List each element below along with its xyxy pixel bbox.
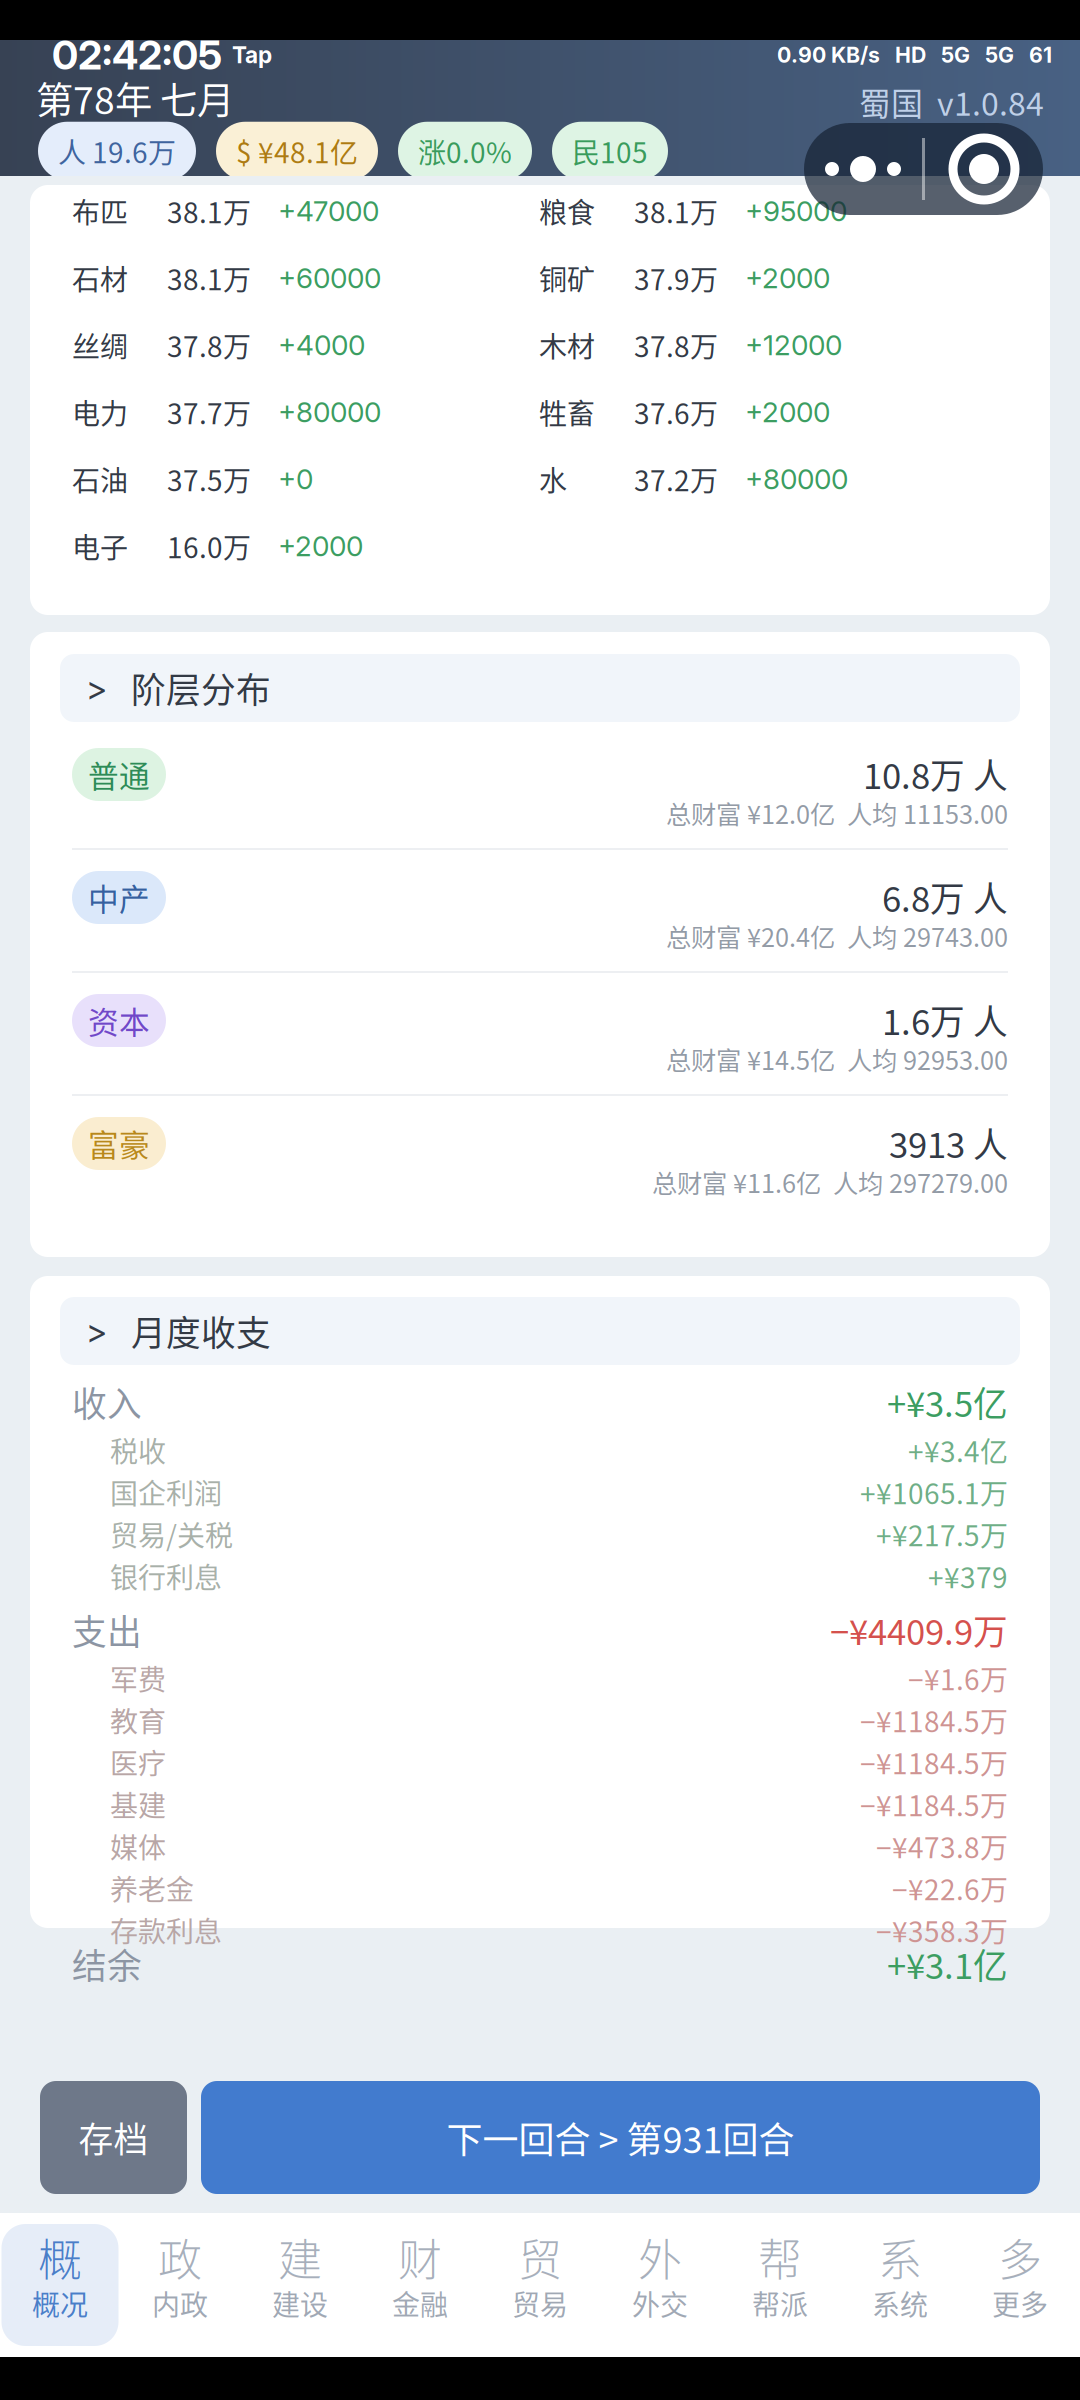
staticText: 结余 xyxy=(72,1939,142,1989)
staticText: 粮食 xyxy=(539,191,595,231)
staticText: 概 xyxy=(38,2225,82,2289)
staticText: 16.0万 xyxy=(167,526,251,566)
staticText: +0 xyxy=(278,462,313,496)
staticText: 中产 xyxy=(88,875,150,920)
staticText: 内政 xyxy=(152,2283,208,2323)
staticText: 37.8万 xyxy=(634,325,718,365)
staticText: 帮派 xyxy=(752,2283,808,2323)
staticText: 37.7万 xyxy=(167,392,251,432)
staticText: 电子 xyxy=(72,526,128,566)
staticText: 0.90 KB/s HD 5G 5G 61 xyxy=(777,42,1052,68)
staticText: −¥1184.5万 xyxy=(860,1742,1008,1782)
staticText: +95000 xyxy=(745,194,847,228)
staticText: 总财富 ¥20.4亿 人均 29743.00 xyxy=(666,918,1008,954)
staticText: 外 xyxy=(638,2225,682,2289)
staticText: > xyxy=(86,668,107,708)
button[interactable]: 帮 xyxy=(720,2223,840,2346)
staticText: +4000 xyxy=(278,328,365,362)
staticText: +¥3.4亿 xyxy=(908,1430,1008,1470)
staticText: 建设 xyxy=(272,2283,328,2323)
staticText: +12000 xyxy=(745,328,842,362)
staticText: 石油 xyxy=(72,459,128,499)
staticText: 军费 xyxy=(110,1658,166,1698)
staticText: 涨0.0% xyxy=(418,131,512,171)
staticText: 阶层分布 xyxy=(107,663,271,713)
button[interactable]: 政 xyxy=(120,2223,240,2346)
staticText: 系统 xyxy=(872,2283,928,2323)
staticText: 布匹 xyxy=(72,191,128,231)
staticText: 富豪 xyxy=(88,1121,150,1166)
button[interactable]: 多 xyxy=(960,2223,1080,2346)
staticText: 政 xyxy=(158,2225,202,2289)
staticText: +¥3.1亿 xyxy=(887,1939,1008,1989)
staticText: 木材 xyxy=(539,325,595,365)
staticText: +60000 xyxy=(278,261,381,295)
staticText: 更多 xyxy=(992,2283,1048,2323)
staticText: 媒体 xyxy=(110,1826,166,1866)
staticText: −¥22.6万 xyxy=(892,1868,1008,1908)
staticText: 3913 人 xyxy=(889,1118,1008,1168)
staticText: +80000 xyxy=(278,395,381,429)
button[interactable]: > xyxy=(60,654,1020,722)
staticText: 银行利息 xyxy=(110,1556,222,1596)
staticText: −¥358.3万 xyxy=(876,1910,1008,1950)
staticText: 37.5万 xyxy=(167,459,251,499)
staticText: 丝绸 xyxy=(72,325,128,365)
staticText: 财 xyxy=(398,2225,442,2289)
staticText: 10.8万 人 xyxy=(863,749,1008,799)
button[interactable]: 外 xyxy=(600,2223,720,2346)
staticText: 石材 xyxy=(72,258,128,298)
button[interactable]: 概 xyxy=(0,2223,120,2346)
staticText: 蜀国 v1.0.84 xyxy=(859,79,1044,125)
staticText: 民105 xyxy=(572,131,648,171)
staticText: 存档 xyxy=(78,2112,148,2163)
staticText: +¥379 xyxy=(928,1556,1008,1596)
staticText: 总财富 ¥11.6亿 人均 297279.00 xyxy=(652,1164,1008,1200)
staticText: 存款利息 xyxy=(110,1910,222,1950)
staticText: 38.1万 xyxy=(634,191,718,231)
staticText: 水 xyxy=(539,459,567,499)
staticText: 支出 xyxy=(72,1605,142,1655)
staticText: −¥1184.5万 xyxy=(860,1784,1008,1824)
staticText: 教育 xyxy=(110,1700,166,1740)
staticText: +¥3.5亿 xyxy=(887,1377,1008,1427)
staticText: 下一回合 > 第931回合 xyxy=(446,2111,794,2163)
staticText: 总财富 ¥12.0亿 人均 11153.00 xyxy=(666,795,1008,831)
staticText: +2000 xyxy=(745,395,830,429)
staticText: 铜矿 xyxy=(539,258,595,298)
staticText: −¥473.8万 xyxy=(876,1826,1008,1866)
staticText: +¥217.5万 xyxy=(876,1514,1008,1554)
staticText: 贸易/关税 xyxy=(110,1514,233,1554)
button[interactable]: 财 xyxy=(360,2223,480,2346)
staticText: > xyxy=(86,1311,107,1351)
staticText: 月度收支 xyxy=(107,1306,271,1356)
button[interactable]: 下一回合 > 第931回合 xyxy=(201,2081,1040,2194)
staticText: 38.1万 xyxy=(167,191,251,231)
staticText: 医疗 xyxy=(110,1742,166,1782)
staticText: 资本 xyxy=(88,998,150,1043)
staticText: +2000 xyxy=(745,261,830,295)
staticText: 基建 xyxy=(110,1784,166,1824)
staticText: 第78年 七月 xyxy=(36,71,234,125)
staticText: −¥1184.5万 xyxy=(860,1700,1008,1740)
staticText: 37.9万 xyxy=(634,258,718,298)
staticText: 国企利润 xyxy=(110,1472,222,1512)
staticText: −¥1.6万 xyxy=(908,1658,1008,1698)
button[interactable]: 系 xyxy=(840,2223,960,2346)
staticText: −¥4409.9万 xyxy=(830,1605,1008,1655)
button[interactable]: 贸 xyxy=(480,2223,600,2346)
staticText: 人 19.6万 xyxy=(58,131,176,171)
staticText: 税收 xyxy=(110,1430,166,1470)
staticText: 外交 xyxy=(632,2283,688,2323)
button[interactable]: 存档 xyxy=(40,2081,187,2194)
staticText: 38.1万 xyxy=(167,258,251,298)
staticText: 37.8万 xyxy=(167,325,251,365)
staticText: 普通 xyxy=(88,752,150,797)
staticText: +2000 xyxy=(278,529,363,563)
staticText: 37.6万 xyxy=(634,392,718,432)
button[interactable]: > xyxy=(60,1297,1020,1365)
button[interactable]: 建 xyxy=(240,2223,360,2346)
staticText: 牲畜 xyxy=(539,392,595,432)
staticText: $ ¥48.1亿 xyxy=(236,131,358,171)
staticText: 1.6万 人 xyxy=(882,995,1008,1045)
